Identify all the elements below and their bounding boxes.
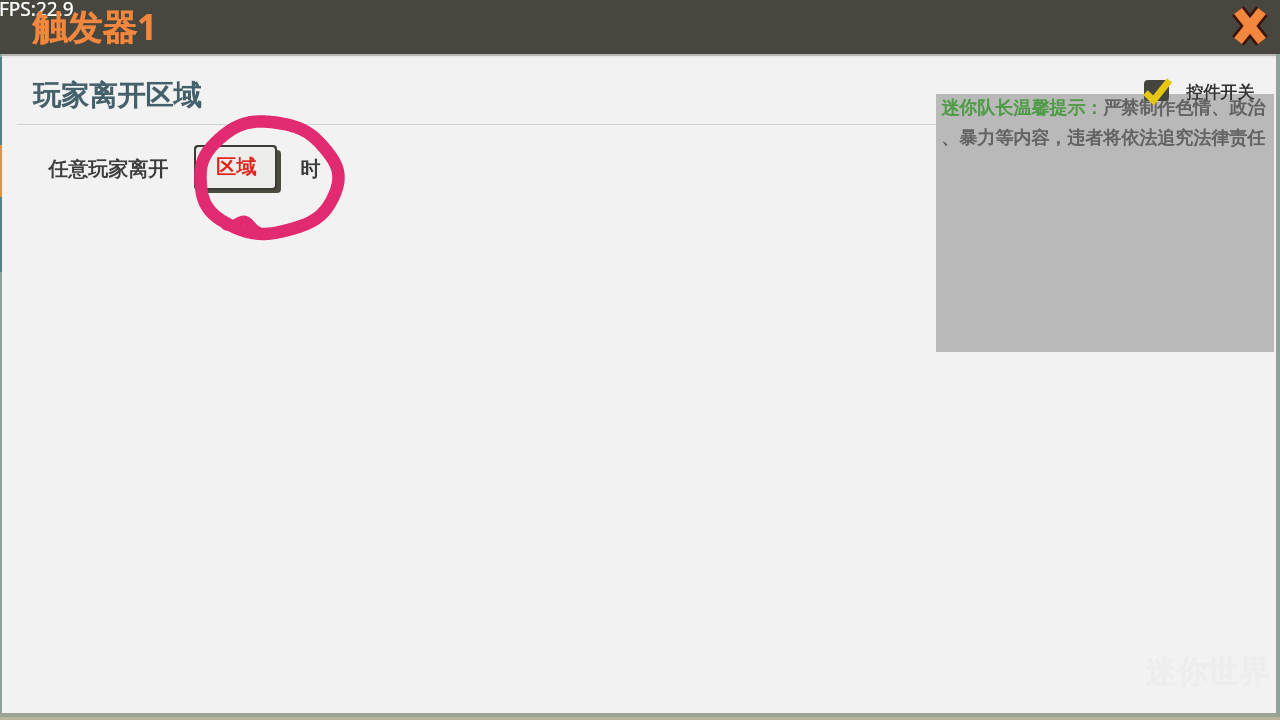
staticText: FPS:22.9 bbox=[0, 0, 74, 22]
staticText: 触发器1 bbox=[32, 3, 158, 51]
staticText: 玩家离开区域 bbox=[33, 78, 201, 113]
staticText: 时 bbox=[300, 157, 320, 182]
button[interactable]: Widget switch checkbox bbox=[1144, 80, 1169, 101]
staticText: 任意玩家离开 bbox=[48, 157, 168, 182]
staticText: 严禁制作色情、政治 bbox=[1103, 97, 1265, 120]
staticText: 区域 bbox=[216, 155, 256, 180]
staticText: 迷你队长温馨提示： bbox=[941, 97, 1103, 120]
staticText: 、暴力等内容，违者将依法追究法律责任 bbox=[941, 127, 1265, 150]
staticText: 控件开关 bbox=[1186, 82, 1254, 103]
button[interactable]: 区域 bbox=[194, 145, 277, 190]
button[interactable]: 控件开关 bbox=[1186, 82, 1254, 103]
button[interactable]: Close bbox=[1224, 0, 1276, 52]
